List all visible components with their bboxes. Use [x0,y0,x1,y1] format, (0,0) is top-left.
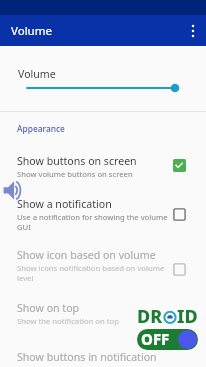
button[interactable]: More options [179,15,206,46]
staticText: OFF [141,329,170,349]
staticText: ID [177,304,198,329]
staticText: GUI [17,222,31,232]
staticText: Show icons notification based on volume [17,263,165,273]
button[interactable]: Toggle [173,306,186,319]
button[interactable]: Show on top [0,301,206,333]
button[interactable]: Toggle [173,159,186,172]
staticText: Show a notification [17,197,112,211]
staticText: Show icon based on volume [17,248,156,262]
button[interactable]: Show a notification [0,197,206,239]
staticText: Volume [11,23,52,39]
button[interactable]: Show buttons on screen [0,154,206,186]
staticText: Show volume buttons on screen [17,169,133,179]
button[interactable]: Volume overlay [1,179,23,201]
staticText: Show buttons in notification [17,350,157,364]
staticText: level [17,273,34,283]
button[interactable]: Show icon based on volume [0,248,206,290]
button[interactable]: Toggle [173,208,186,221]
staticText: Show buttons on screen [17,154,137,168]
staticText: Appearance [17,123,65,134]
staticText: Volume [18,67,56,81]
button[interactable]: Toggle [173,263,186,276]
staticText: Use a notification for showing the volum… [17,212,168,222]
button[interactable]: Show buttons in notification [0,350,206,367]
staticText: Show on top [17,301,80,315]
staticText: DR [137,304,163,329]
staticText: Show the notification on top [17,316,119,326]
